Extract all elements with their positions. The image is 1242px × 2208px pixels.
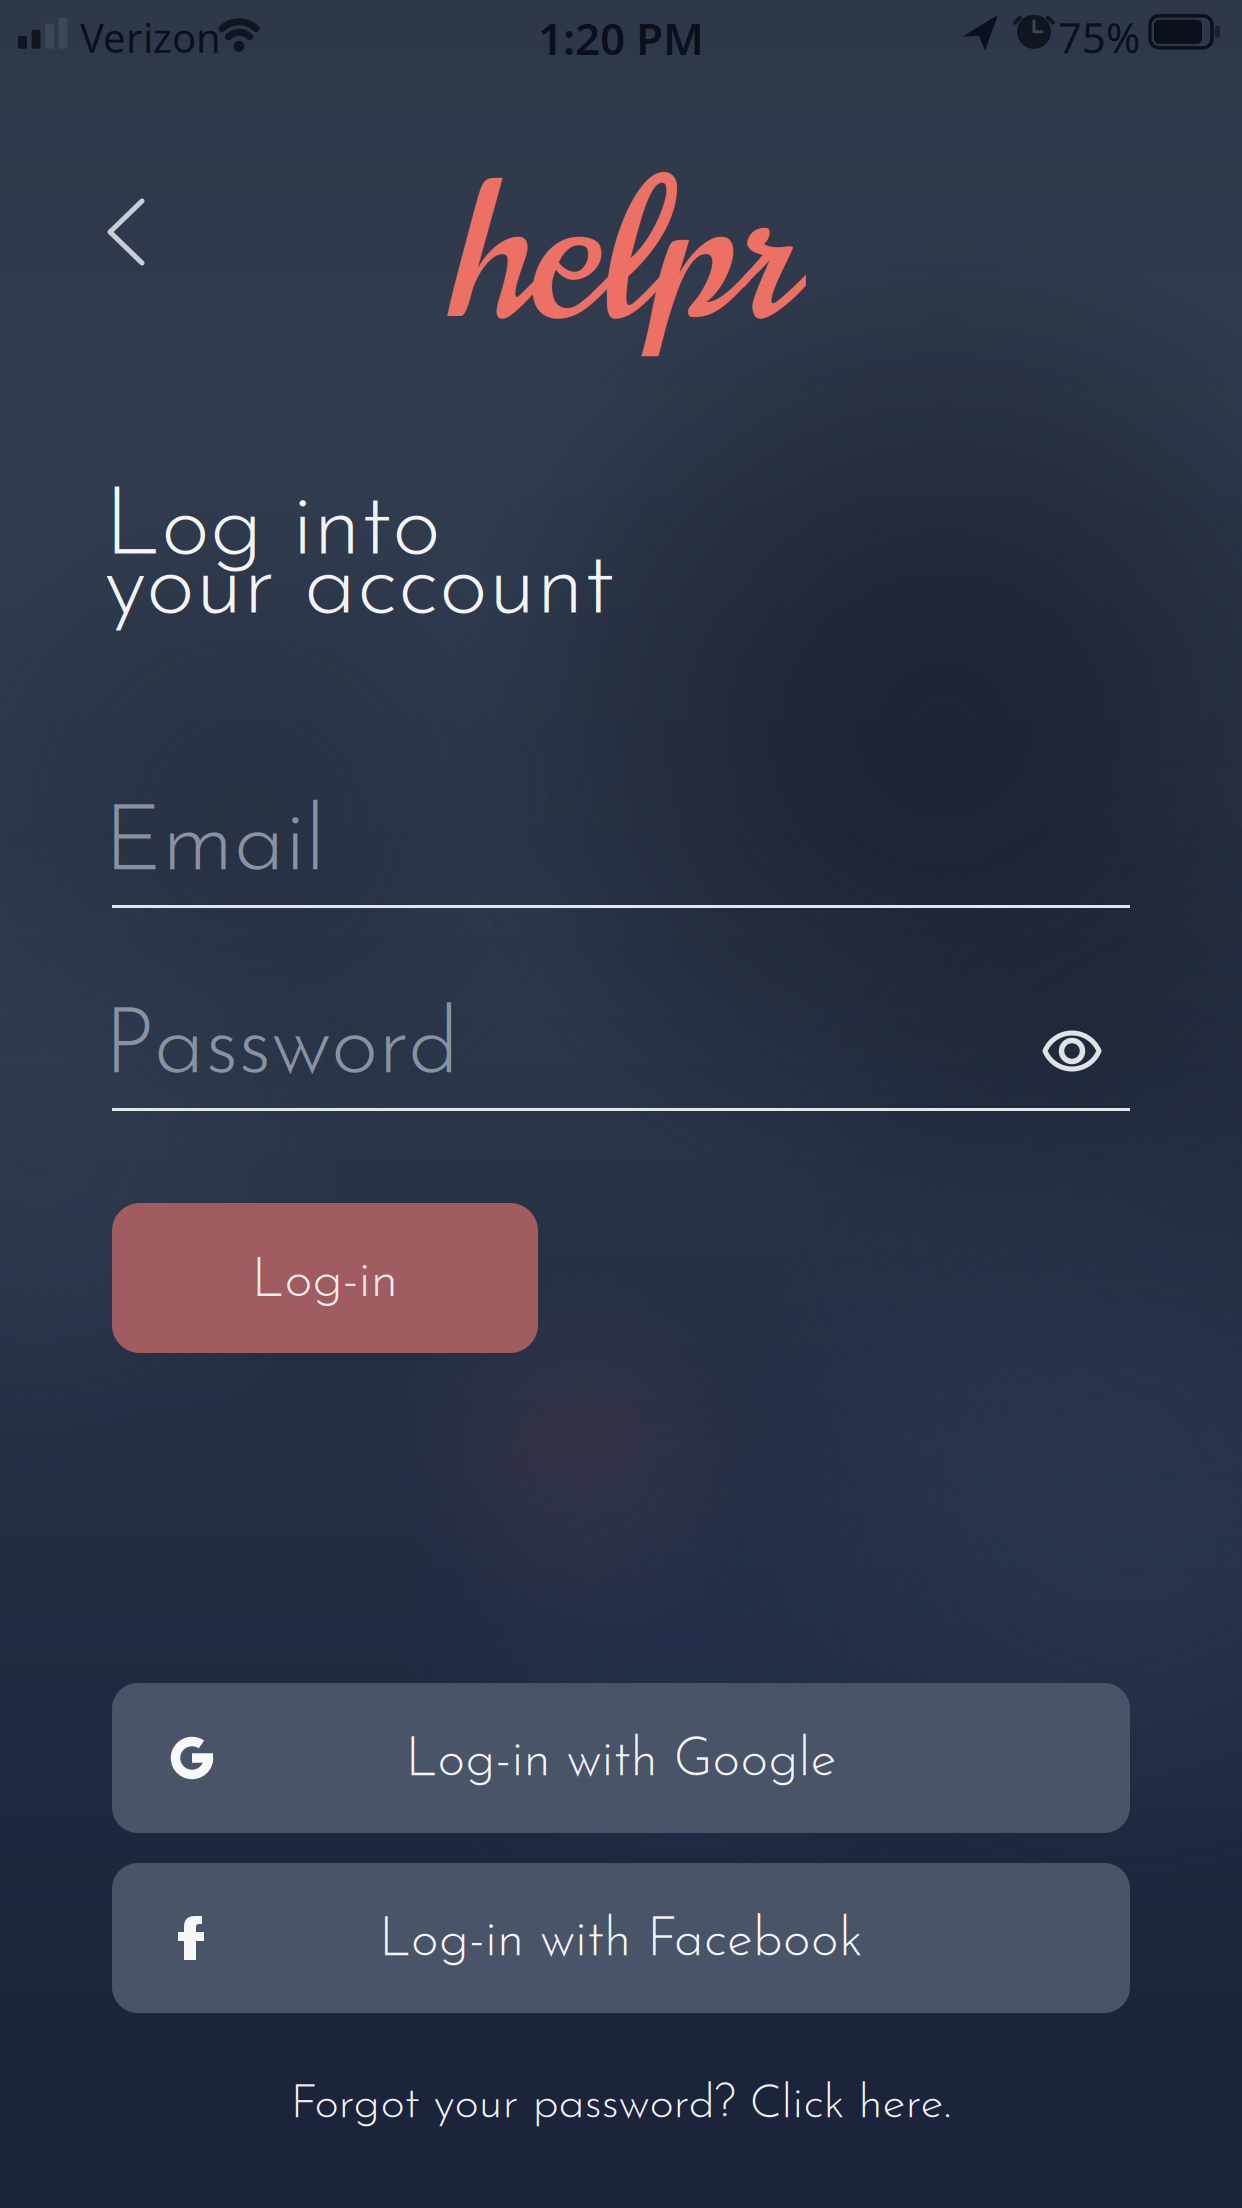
staticText: 1:20 PM bbox=[538, 9, 704, 67]
staticText: Password bbox=[104, 1004, 459, 1095]
button[interactable]: Log-in with Facebook bbox=[112, 1863, 1130, 2013]
staticText: Email bbox=[104, 801, 325, 892]
button[interactable]: Forgot your password? Click here. bbox=[0, 2082, 1242, 2129]
staticText: Log-in with Google bbox=[405, 1735, 836, 1788]
staticText: Log into bbox=[104, 483, 441, 577]
staticText: Verizon bbox=[80, 11, 221, 64]
button[interactable]: Password bbox=[112, 971, 1130, 1111]
staticText: Log-in with Facebook bbox=[379, 1915, 863, 1968]
button[interactable]: Log-in bbox=[112, 1203, 538, 1353]
staticText: your account bbox=[104, 542, 615, 636]
button[interactable]: Email bbox=[112, 768, 1130, 908]
staticText: 75% bbox=[1058, 10, 1140, 65]
staticText: Forgot your password? Click here. bbox=[290, 2082, 951, 2129]
staticText: Log-in bbox=[251, 1255, 398, 1309]
staticText: helpr bbox=[447, 118, 795, 390]
button[interactable]: Log-in with Google bbox=[112, 1683, 1130, 1833]
button[interactable] bbox=[108, 199, 144, 265]
